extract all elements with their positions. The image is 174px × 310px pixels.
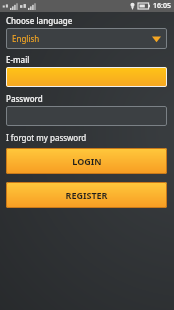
staticText: Password xyxy=(6,93,43,104)
button[interactable]: LOGIN xyxy=(6,148,167,174)
staticText: LOGIN xyxy=(72,155,102,167)
button[interactable]: REGISTER xyxy=(6,182,167,208)
button[interactable]: I forgot my password xyxy=(6,132,87,143)
button[interactable] xyxy=(6,106,167,126)
button[interactable] xyxy=(6,67,167,87)
staticText: Choose language xyxy=(6,15,73,26)
staticText: E-mail xyxy=(6,54,30,65)
button[interactable]: English xyxy=(6,28,167,49)
staticText: 16:05 xyxy=(153,1,171,11)
staticText: I forgot my password xyxy=(6,132,87,143)
staticText: REGISTER xyxy=(65,189,108,201)
staticText: English xyxy=(12,33,40,44)
